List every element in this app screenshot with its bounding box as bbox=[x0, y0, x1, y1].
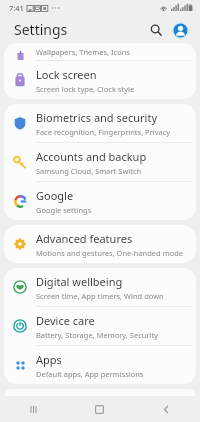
staticText: Battery, Storage, Memory, Security bbox=[36, 330, 158, 340]
button[interactable]: Google bbox=[4, 182, 196, 220]
staticText: Screen lock type, Clock style bbox=[36, 84, 135, 94]
button[interactable]: Lock screen bbox=[4, 61, 196, 99]
staticText: Apps bbox=[36, 352, 62, 367]
button[interactable]: Recent apps bbox=[0, 396, 66, 422]
staticText: Advanced features bbox=[36, 231, 133, 246]
staticText: 7:41 bbox=[9, 3, 24, 13]
button[interactable]: Accounts and backup bbox=[4, 143, 196, 181]
staticText: Screen time, App timers, Wind down bbox=[36, 291, 164, 301]
button[interactable]: Apps bbox=[4, 346, 196, 384]
button[interactable]: Digital wellbeing bbox=[4, 268, 196, 306]
staticText: Motions and gestures, One-handed mode bbox=[36, 248, 184, 258]
button[interactable]: Account profile bbox=[170, 20, 190, 40]
staticText: Wallpapers, Themes, Icons bbox=[36, 47, 130, 57]
button[interactable]: Device care bbox=[4, 307, 196, 345]
button[interactable]: Search settings bbox=[146, 20, 166, 40]
staticText: Biometrics and security bbox=[36, 110, 157, 125]
staticText: Device care bbox=[36, 313, 95, 328]
staticText: Face recognition, Fingerprints, Privacy bbox=[36, 127, 171, 137]
staticText: Accounts and backup bbox=[36, 149, 147, 164]
staticText: Default apps, App permissions bbox=[36, 369, 144, 379]
staticText: Lock screen bbox=[36, 67, 97, 82]
button[interactable]: Biometrics and security bbox=[4, 104, 196, 142]
staticText: Settings bbox=[14, 20, 68, 39]
staticText: Google settings bbox=[36, 205, 92, 215]
button[interactable]: Wallpapers, Themes, Icons bbox=[4, 43, 196, 60]
button[interactable]: Home bbox=[66, 396, 133, 422]
staticText: Digital wellbeing bbox=[36, 274, 123, 289]
staticText: Google bbox=[36, 188, 74, 203]
staticText: Samsung Cloud, Smart Switch bbox=[36, 166, 142, 176]
button[interactable]: Advanced features bbox=[4, 225, 196, 263]
button[interactable]: Back bbox=[133, 396, 200, 422]
